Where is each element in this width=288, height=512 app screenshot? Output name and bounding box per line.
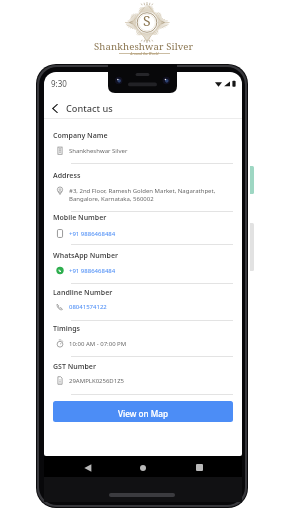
button[interactable]: Recents — [187, 456, 211, 477]
staticText: Mobile Number — [53, 213, 107, 223]
button[interactable]: Contact us — [47, 96, 113, 120]
staticText: Bangalore, Karnataka, 560002 — [69, 195, 154, 203]
button[interactable]: #3, 2nd Floor, Ramesh Golden Market, Nag… — [53, 180, 233, 212]
button[interactable]: 08041574122 — [53, 297, 233, 321]
staticText: WhatsApp Number — [53, 251, 119, 261]
button[interactable]: Shankheshwar Silver — [53, 140, 233, 164]
button[interactable]: +91 9886468484 — [53, 222, 233, 245]
button[interactable]: 29AMPLK0256D1Z5 — [53, 371, 233, 395]
staticText: Contact us — [66, 102, 113, 115]
staticText: 08041574122 — [69, 303, 107, 311]
staticText: +91 9886468484 — [69, 267, 116, 275]
staticText: Address — [53, 171, 81, 181]
staticText: GST Number — [53, 362, 96, 372]
button[interactable]: View on Map — [53, 401, 233, 422]
staticText: #3, 2nd Floor, Ramesh Golden Market, Nag… — [69, 187, 216, 195]
staticText: Timings — [53, 324, 80, 334]
staticText: Shankheshwar Silver — [94, 40, 194, 53]
staticText: View on Map — [118, 408, 169, 419]
staticText: Around the World — [130, 51, 159, 55]
staticText: S — [143, 11, 151, 30]
staticText: Landline Number — [53, 288, 113, 298]
staticText: Company Name — [53, 131, 108, 141]
button[interactable]: Back — [76, 456, 100, 477]
button[interactable]: 10:00 AM - 07:00 PM — [53, 333, 233, 356]
staticText: +91 9886468484 — [69, 230, 116, 238]
staticText: 29AMPLK0256D1Z5 — [69, 377, 125, 385]
staticText: 10:00 AM - 07:00 PM — [69, 340, 127, 348]
button[interactable]: +91 9886468484 — [53, 260, 233, 285]
staticText: 9:30 — [51, 78, 67, 89]
button[interactable]: Home — [131, 456, 155, 477]
staticText: Shankheshwar Silver — [69, 147, 128, 155]
